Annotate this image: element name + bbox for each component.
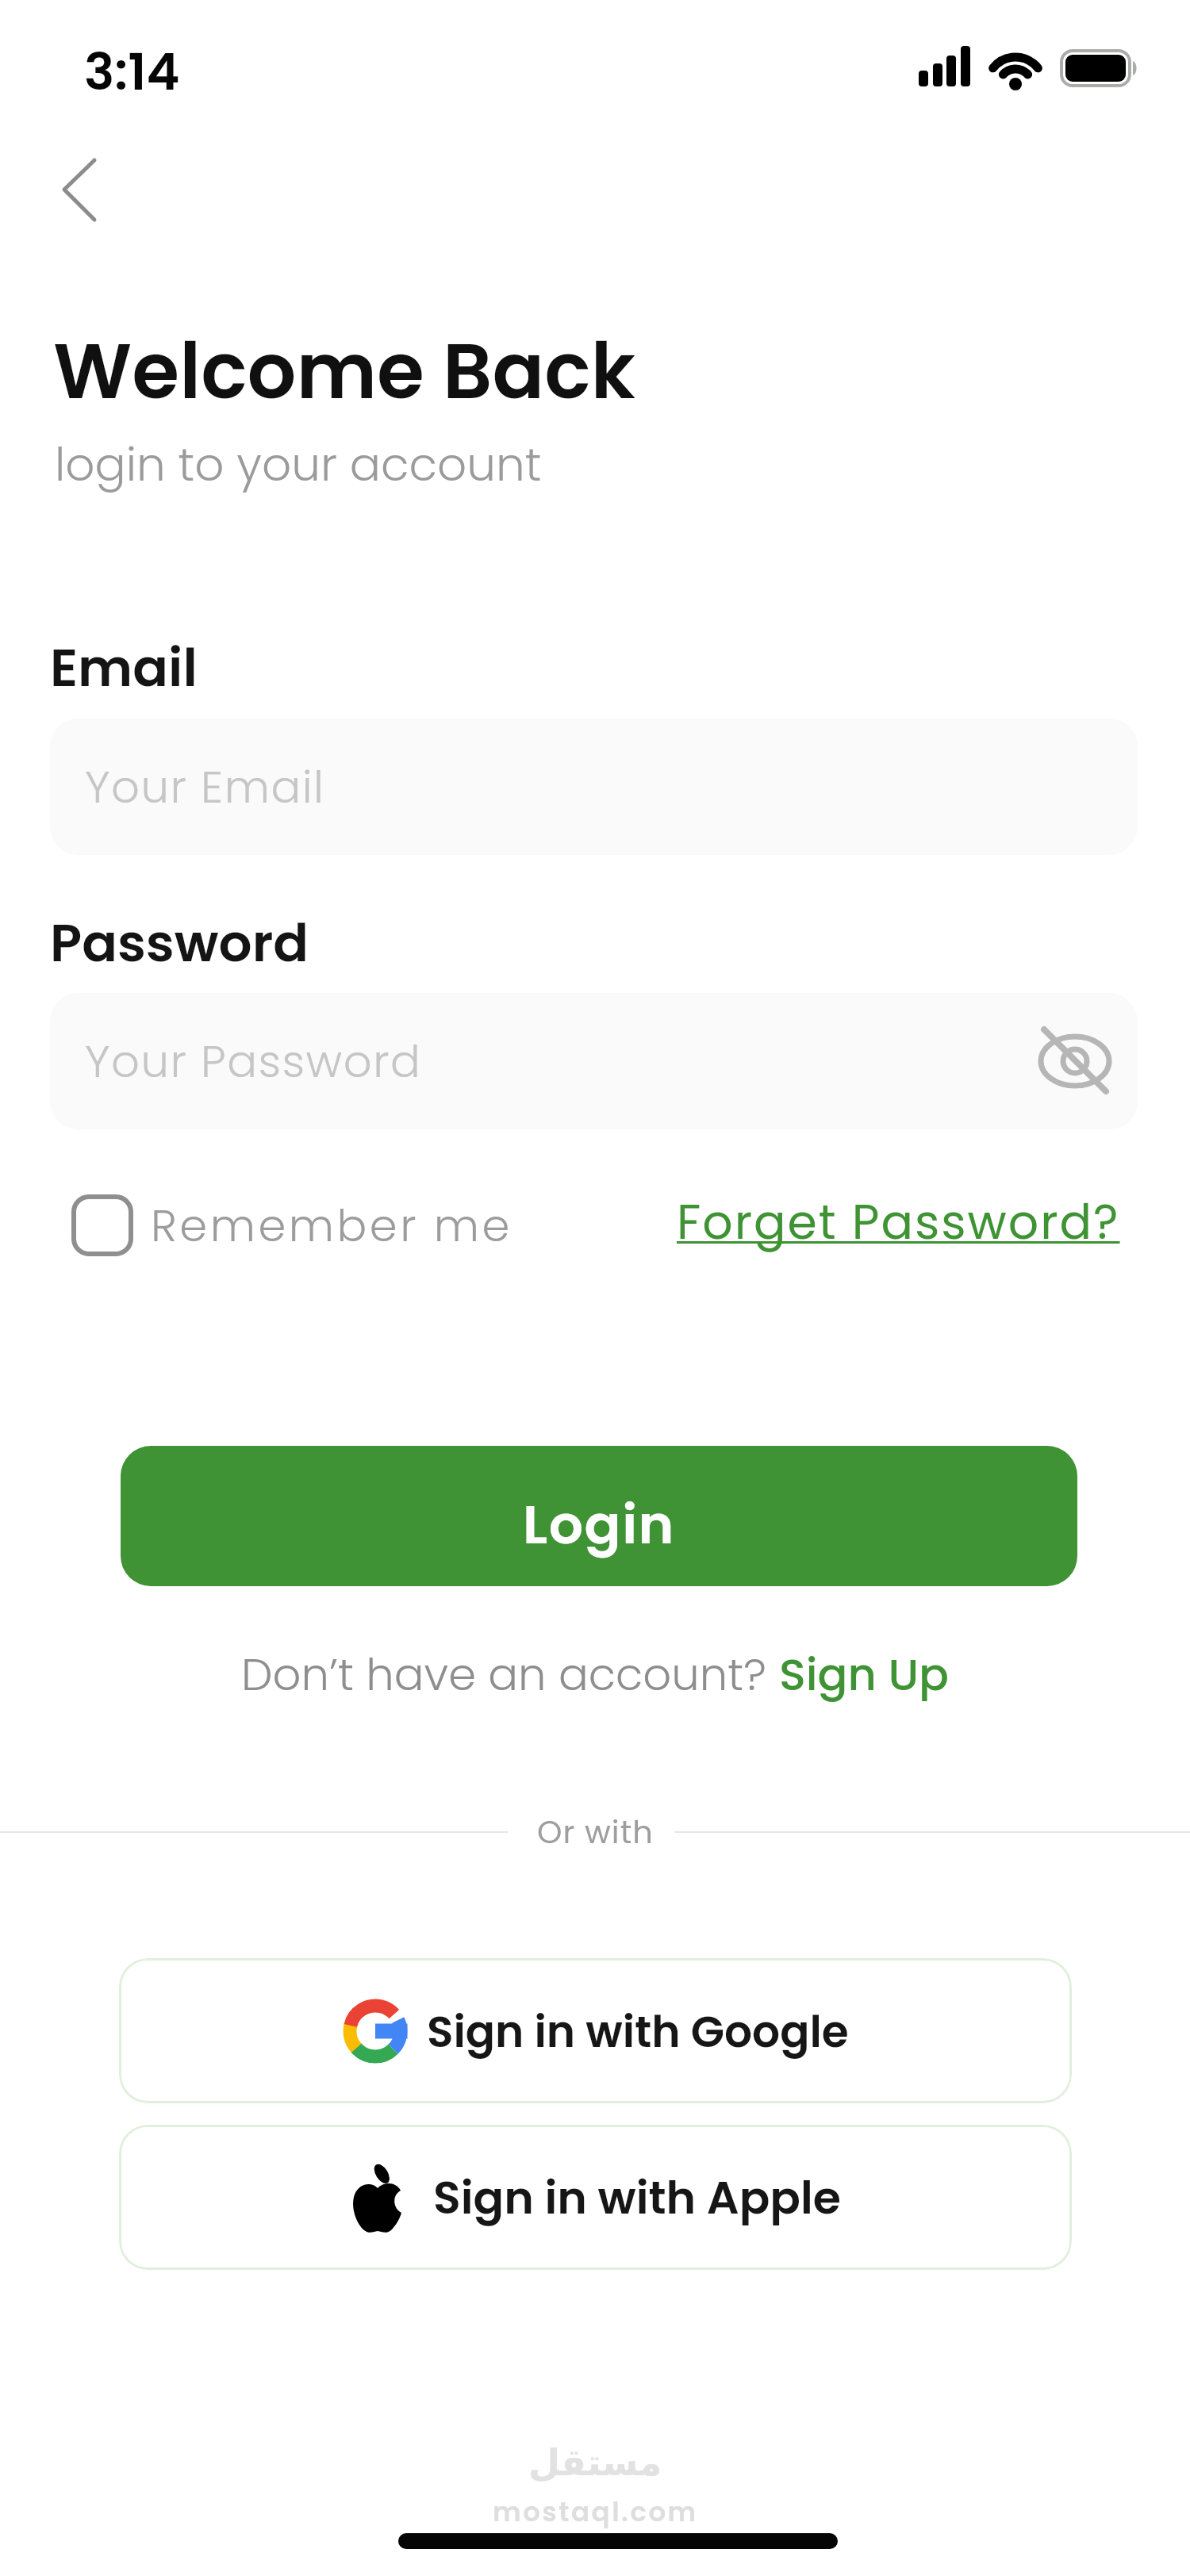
staticText: Don’t have an account? <box>241 1643 779 1705</box>
staticText: Sign in with Apple <box>433 2166 841 2229</box>
staticText: Email <box>50 631 198 704</box>
staticText: Remember me <box>151 1194 512 1256</box>
staticText: Your Password <box>85 1030 422 1092</box>
button[interactable]: Login <box>121 1446 1077 1586</box>
button[interactable]: Your Password <box>50 993 1138 1129</box>
staticText: Your Email <box>85 756 325 818</box>
button[interactable]: Your Email <box>50 719 1138 855</box>
staticText: مستقل <box>528 2441 662 2484</box>
staticText: Welcome Back <box>53 317 636 425</box>
staticText: 3:14 <box>84 36 180 108</box>
staticText: Login <box>523 1487 676 1562</box>
staticText: Sign in with Google <box>427 2001 849 2062</box>
staticText: mostaql.com <box>493 2493 698 2531</box>
button[interactable]: Remember me <box>71 1194 512 1256</box>
button[interactable] <box>44 141 132 236</box>
staticText: Or with <box>537 1810 654 1854</box>
button[interactable]: Sign in with Apple <box>119 2125 1072 2270</box>
staticText: login to your account <box>55 432 542 496</box>
button[interactable]: Sign Up <box>779 1643 950 1705</box>
button[interactable]: Forget Password? <box>677 1189 1120 1255</box>
button[interactable]: Sign in with Google <box>119 1958 1072 2103</box>
staticText: Password <box>50 907 309 979</box>
